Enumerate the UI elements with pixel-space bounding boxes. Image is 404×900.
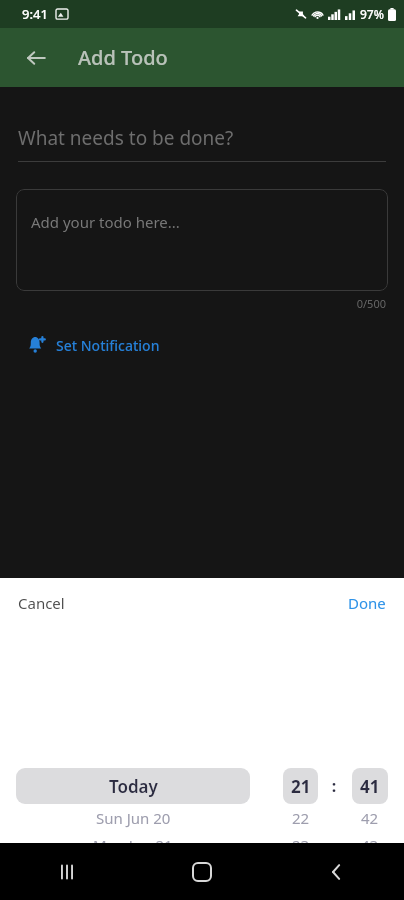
staticText: 43: [361, 835, 379, 855]
staticText: Sun Jun 20: [96, 808, 171, 828]
staticText: :: [330, 775, 338, 797]
button[interactable]: 23: [283, 831, 318, 858]
staticText: 21: [291, 775, 311, 798]
button[interactable]: What needs to be done?: [18, 115, 386, 161]
staticText: Add Todo: [78, 44, 168, 71]
button[interactable]: 41: [352, 768, 388, 804]
button[interactable]: Recents: [40, 845, 94, 899]
button[interactable]: 22: [283, 804, 318, 831]
button[interactable]: Cancel: [6, 585, 77, 621]
staticText: 9:41: [22, 5, 48, 23]
staticText: 0/500: [0, 296, 386, 311]
button[interactable]: 42: [352, 804, 388, 831]
button[interactable]: 43: [352, 831, 388, 858]
button[interactable]: Back: [14, 36, 58, 80]
button[interactable]: Today: [16, 768, 250, 804]
staticText: Add your todo here...: [31, 212, 180, 232]
button[interactable]: Mon Jun 21: [16, 831, 250, 858]
staticText: Cancel: [18, 593, 65, 613]
button[interactable]: Sun Jun 20: [16, 804, 250, 831]
button[interactable]: Home: [175, 845, 229, 899]
button[interactable]: Back: [310, 845, 364, 899]
staticText: 97%: [360, 6, 384, 22]
staticText: 23: [292, 835, 310, 855]
staticText: What needs to be done?: [18, 125, 234, 151]
button[interactable]: 21: [283, 768, 318, 804]
button[interactable]: Set Notification: [26, 328, 160, 362]
staticText: 22: [292, 808, 310, 828]
button[interactable]: Done: [336, 585, 398, 621]
staticText: 42: [361, 808, 379, 828]
staticText: Mon Jun 21: [93, 835, 173, 855]
button[interactable]: Tue Jun 22: [16, 858, 250, 878]
staticText: Today: [109, 775, 158, 798]
button[interactable]: Add your todo here...: [16, 189, 388, 291]
staticText: 41: [360, 775, 380, 798]
staticText: Done: [348, 593, 386, 613]
staticText: Set Notification: [56, 336, 160, 355]
